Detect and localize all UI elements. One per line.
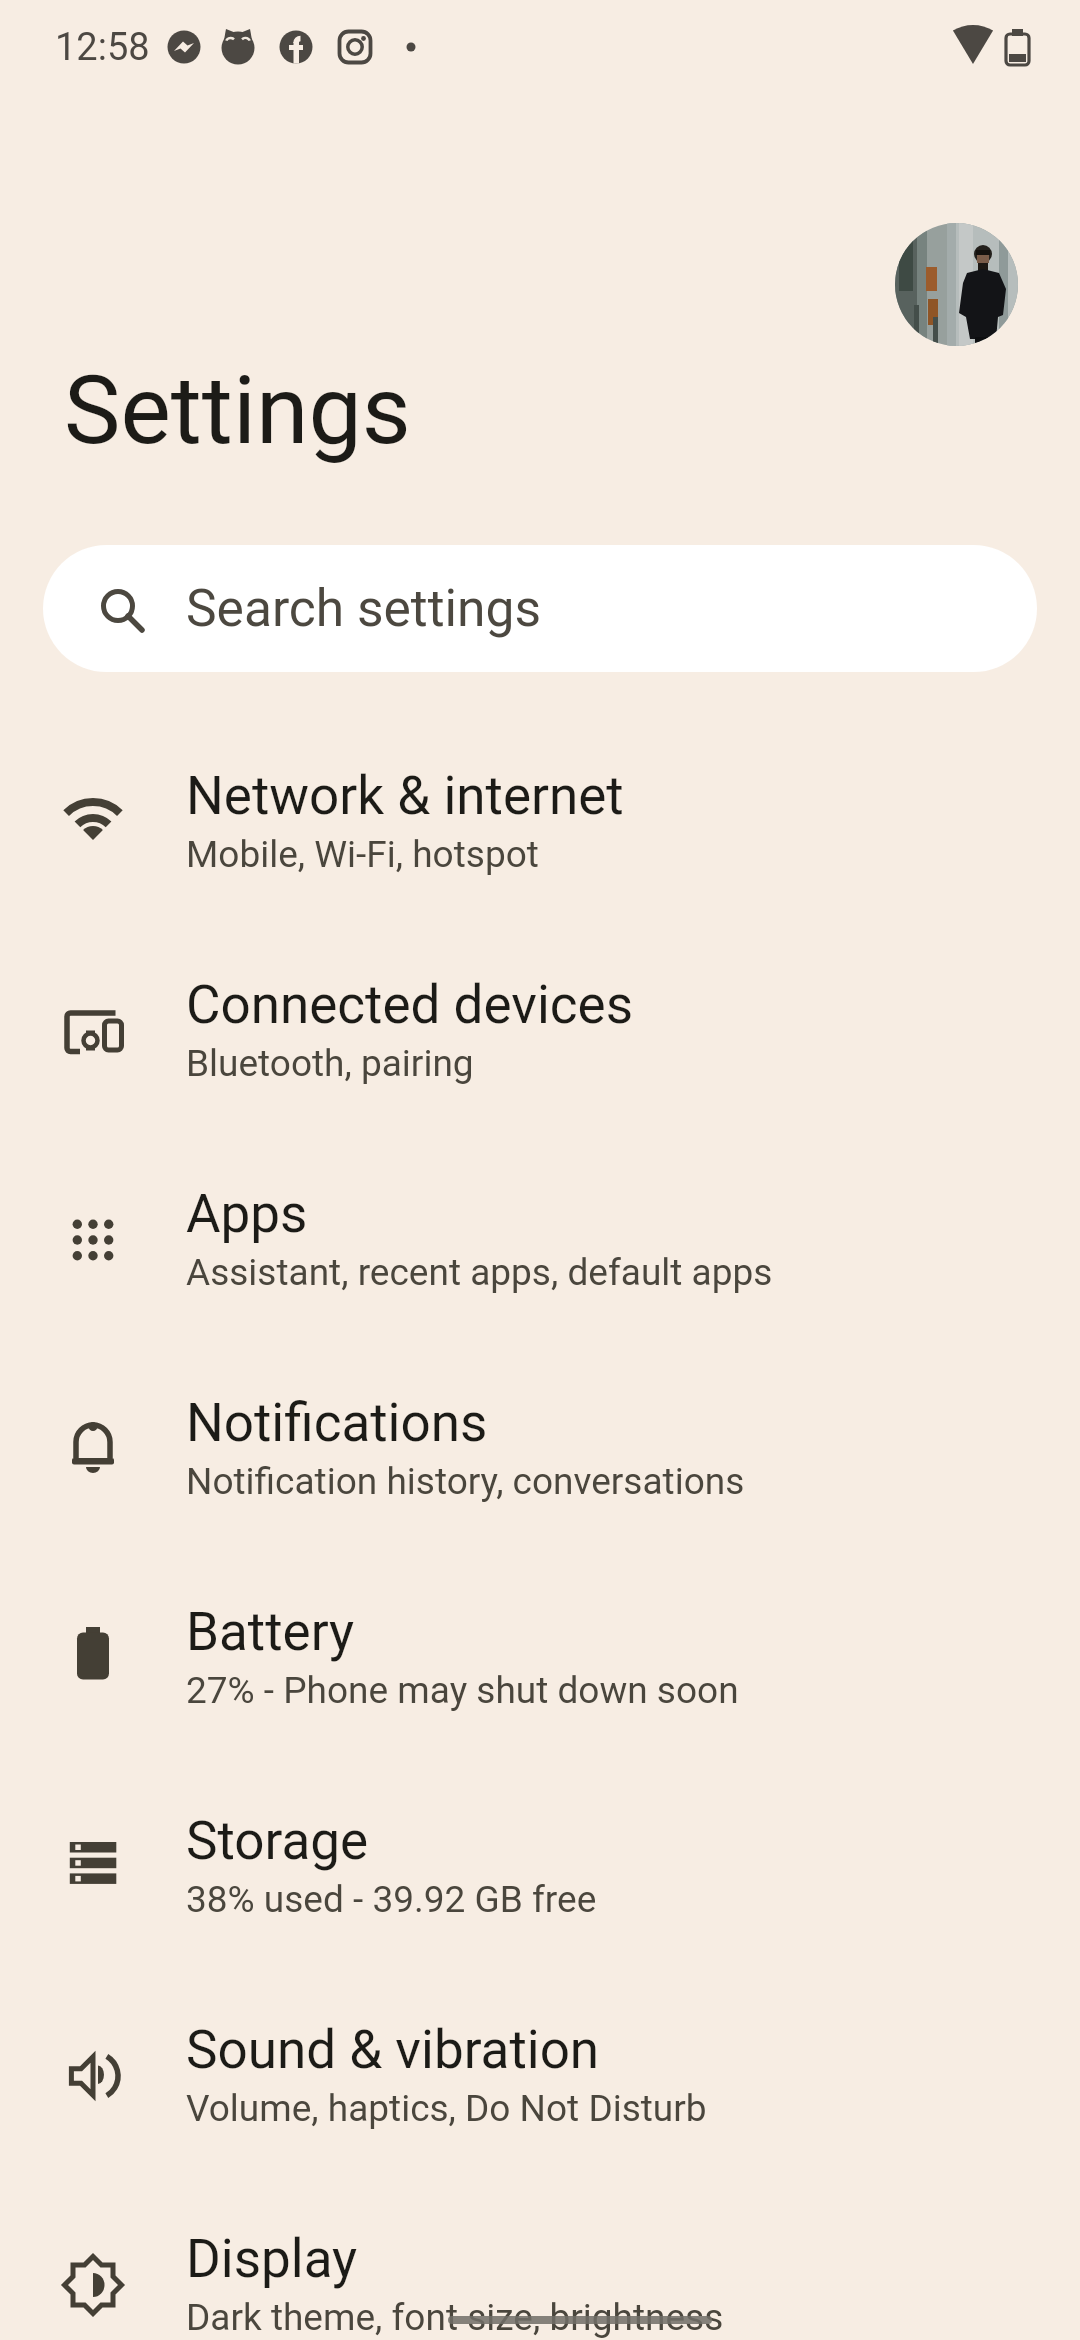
button[interactable]: Notifications — [0, 1349, 1080, 1557]
button[interactable]: Network & internet — [0, 722, 1080, 930]
staticText: 12:58 — [55, 25, 150, 70]
staticText: Connected devices — [186, 974, 634, 1036]
staticText: Sound & vibration — [186, 2019, 600, 2081]
staticText: Assistant, recent apps, default apps — [186, 1251, 773, 1294]
staticText: Volume, haptics, Do Not Disturb — [186, 2087, 707, 2130]
button[interactable]: Display — [0, 2185, 1080, 2340]
staticText: Display — [186, 2228, 358, 2290]
staticText: 38% used - 39.92 GB free — [186, 1878, 597, 1921]
staticText: Mobile, Wi-Fi, hotspot — [186, 833, 539, 876]
staticText: 27% - Phone may shut down soon — [186, 1669, 739, 1712]
staticText: Bluetooth, pairing — [186, 1042, 474, 1085]
staticText: Notifications — [186, 1392, 488, 1454]
staticText: Storage — [186, 1810, 369, 1872]
staticText: Settings — [64, 355, 411, 466]
button[interactable]: Sound & vibration — [0, 1976, 1080, 2184]
button[interactable]: Storage — [0, 1767, 1080, 1975]
staticText: Search settings — [186, 578, 542, 638]
button[interactable]: Apps — [0, 1140, 1080, 1348]
button[interactable]: Search settings — [43, 545, 1037, 672]
staticText: Notification history, conversations — [186, 1460, 745, 1503]
staticText: Network & internet — [186, 765, 624, 827]
button[interactable]: Connected devices — [0, 931, 1080, 1139]
staticText: Battery — [186, 1601, 355, 1663]
staticText: Dark theme, font size, brightness — [186, 2296, 724, 2339]
button[interactable]: Battery — [0, 1558, 1080, 1766]
staticText: Apps — [186, 1183, 308, 1245]
button[interactable] — [895, 223, 1018, 346]
